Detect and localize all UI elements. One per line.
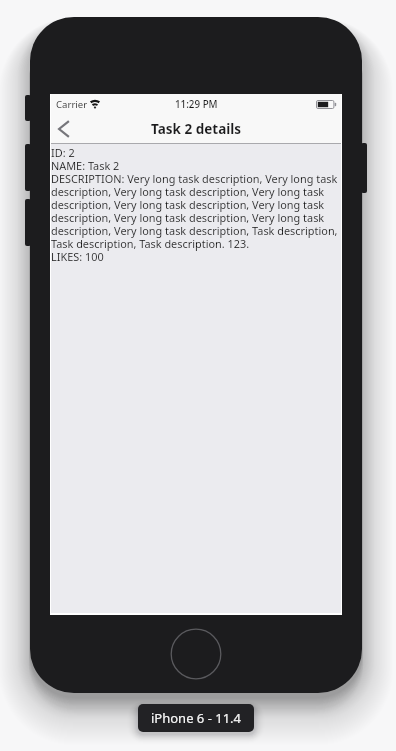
button[interactable]: iPhone 6 - 11.4: [138, 704, 254, 732]
button[interactable]: Back: [51, 114, 77, 144]
staticText: Task 2 details: [151, 120, 242, 138]
staticText: 11:29 PM: [175, 98, 218, 111]
staticText: Carrier: [56, 98, 88, 111]
staticText: iPhone 6 - 11.4: [151, 709, 242, 727]
staticText: ID: 2 NAME: Task 2 DESCRIPTION: Very lon…: [51, 147, 338, 264]
